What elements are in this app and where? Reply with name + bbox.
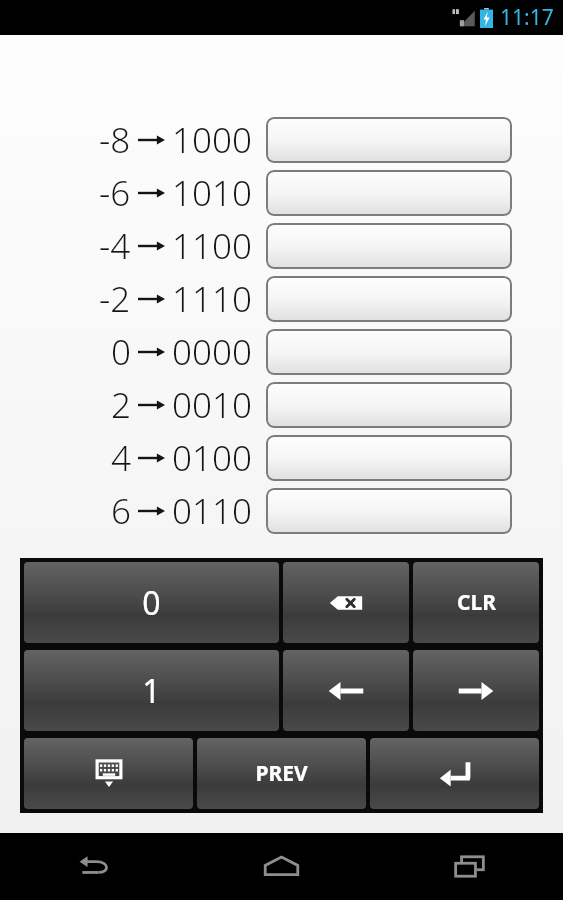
button[interactable]: Edit field 0110 — [266, 488, 512, 534]
button[interactable]: Recent apps — [375, 833, 563, 900]
staticText: 1000 — [172, 116, 252, 164]
button[interactable]: Back — [0, 833, 187, 900]
staticText: -4 — [99, 222, 131, 270]
button[interactable]: CLR — [413, 562, 539, 643]
staticText: 1110 — [172, 275, 252, 323]
button[interactable]: Edit field 0000 — [266, 329, 512, 375]
button[interactable]: Edit field 1100 — [266, 223, 512, 269]
staticText: 1 — [142, 669, 161, 713]
button[interactable]: Edit field 1010 — [266, 170, 512, 216]
staticText: 4 — [111, 434, 131, 482]
staticText: 1010 — [172, 169, 252, 217]
staticText: 0000 — [172, 328, 252, 376]
button[interactable]: 1 — [24, 650, 279, 731]
staticText: 0010 — [172, 381, 252, 429]
button[interactable]: Home — [187, 833, 375, 900]
button[interactable]: Hide keyboard — [24, 738, 193, 809]
button[interactable]: 0 — [24, 562, 279, 643]
staticText: 0100 — [172, 434, 252, 482]
button[interactable]: Backspace — [283, 562, 409, 643]
staticText: 2 — [111, 381, 131, 429]
staticText: 0 — [111, 328, 131, 376]
button[interactable]: Edit field 1000 — [266, 117, 512, 163]
staticText: 0110 — [172, 487, 252, 535]
staticText: -6 — [99, 169, 131, 217]
staticText: -8 — [99, 116, 131, 164]
button[interactable]: Move left — [283, 650, 409, 731]
staticText: -2 — [99, 275, 131, 323]
staticText: CLR — [457, 588, 496, 617]
staticText: PREV — [255, 759, 308, 788]
staticText: 0 — [142, 581, 161, 625]
staticText: 1100 — [172, 222, 252, 270]
button[interactable]: Edit field 1110 — [266, 276, 512, 322]
button[interactable]: Edit field 0010 — [266, 382, 512, 428]
button[interactable]: PREV — [197, 738, 366, 809]
button[interactable]: Enter — [370, 738, 539, 809]
staticText: 6 — [111, 487, 131, 535]
button[interactable]: Move right — [413, 650, 539, 731]
button[interactable]: Edit field 0100 — [266, 435, 512, 481]
staticText: 11:17 — [500, 3, 554, 32]
